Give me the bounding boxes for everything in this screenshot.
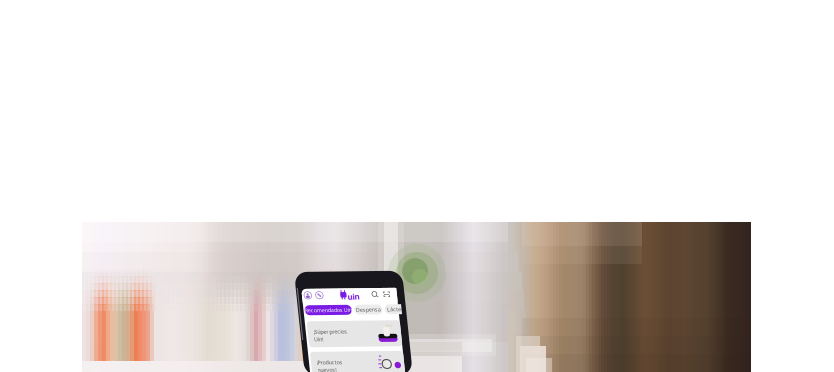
button[interactable]: Mi cuenta	[302, 292, 309, 299]
staticText: Recomendados Uin	[301, 307, 348, 314]
staticText: uin	[345, 292, 357, 302]
staticText: ¡Súper precios	[307, 328, 341, 335]
button[interactable]: WhatsApp	[313, 292, 321, 299]
button[interactable]: Buscar	[369, 292, 376, 299]
staticText: ¡Productos	[307, 359, 333, 366]
staticText: Lácteos	[383, 307, 403, 314]
button[interactable]: Recomendados Uin	[301, 305, 348, 315]
button[interactable]: Escanear	[381, 292, 387, 299]
staticText: nuevos!	[307, 366, 326, 372]
button[interactable]: Lácteos	[381, 305, 405, 315]
button[interactable]: Despensa	[350, 305, 378, 315]
button[interactable]: ¡Productos	[301, 352, 394, 372]
staticText: Despensa	[352, 307, 377, 314]
button[interactable]: ¡Súper precios	[301, 321, 394, 347]
staticText: Uin!	[307, 336, 316, 343]
